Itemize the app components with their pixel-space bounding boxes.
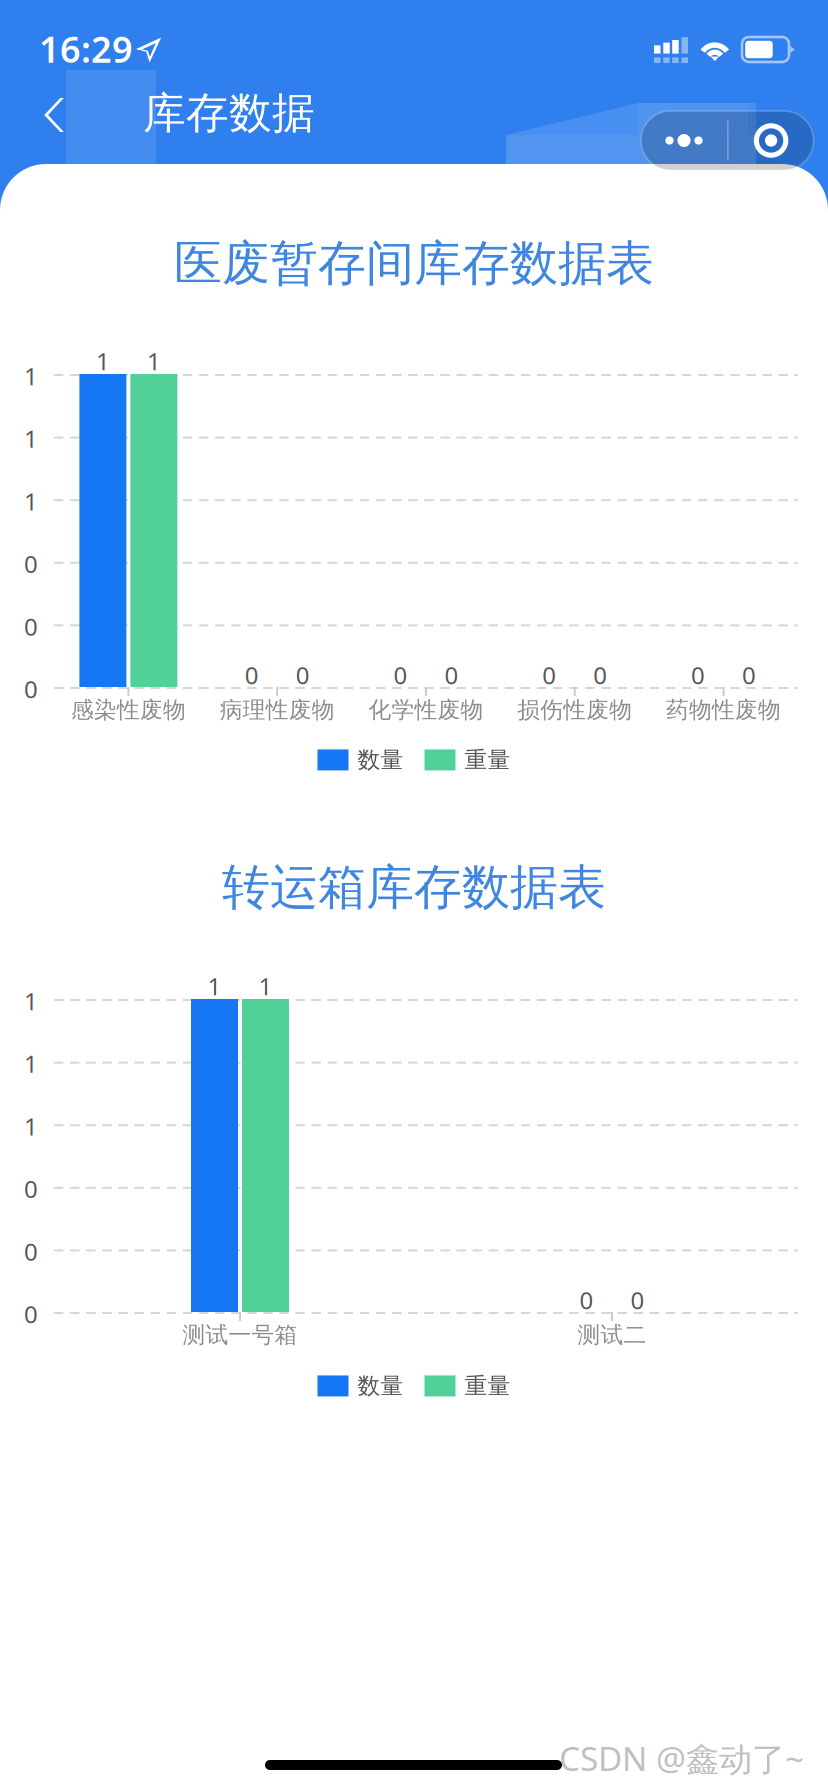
staticText: 数量 — [357, 746, 403, 774]
staticText: 损伤性废物 — [517, 696, 632, 724]
staticText: 1 — [96, 345, 110, 377]
staticText: 重量 — [464, 746, 510, 774]
button[interactable]: More options — [641, 111, 727, 170]
staticText: 药物性废物 — [666, 696, 781, 724]
staticText: 病理性废物 — [220, 696, 335, 724]
staticText: 0 — [593, 659, 607, 691]
staticText: 1 — [147, 345, 161, 377]
staticText: 0 — [24, 1173, 38, 1205]
staticText: 16:29 — [39, 25, 133, 73]
staticText: 1 — [24, 423, 38, 454]
staticText: 1 — [24, 1048, 38, 1079]
staticText: 0 — [630, 1284, 644, 1316]
staticText: 重量 — [464, 1372, 510, 1400]
staticText: 库存数据 — [143, 87, 315, 139]
staticText: 数量 — [357, 1372, 403, 1400]
staticText: CSDN @鑫动了~ — [559, 1736, 804, 1780]
staticText: 测试一号箱 — [182, 1321, 297, 1349]
staticText: 1 — [258, 970, 272, 1002]
staticText: 化学性废物 — [368, 696, 483, 724]
staticText: 0 — [742, 659, 756, 691]
staticText: 0 — [24, 1235, 38, 1267]
staticText: 0 — [24, 610, 38, 642]
staticText: 0 — [245, 659, 259, 691]
staticText: 0 — [691, 659, 705, 691]
staticText: 0 — [24, 1298, 38, 1330]
staticText: 0 — [393, 659, 407, 691]
staticText: 1 — [24, 360, 38, 392]
staticText: 0 — [24, 548, 38, 580]
staticText: 0 — [296, 659, 310, 691]
staticText: 1 — [207, 970, 221, 1002]
staticText: 转运箱库存数据表 — [222, 858, 606, 917]
staticText: 0 — [24, 673, 38, 705]
staticText: 0 — [444, 659, 458, 691]
button[interactable]: Close mini program — [729, 111, 814, 170]
staticText: 医废暂存间库存数据表 — [174, 234, 654, 293]
staticText: 感染性废物 — [71, 696, 186, 724]
staticText: 1 — [24, 985, 38, 1017]
staticText: 0 — [579, 1284, 593, 1316]
staticText: 1 — [24, 485, 38, 517]
button[interactable]: Back — [24, 79, 84, 151]
staticText: 1 — [24, 1110, 38, 1142]
staticText: 测试二 — [577, 1321, 646, 1349]
staticText: 0 — [542, 659, 556, 691]
